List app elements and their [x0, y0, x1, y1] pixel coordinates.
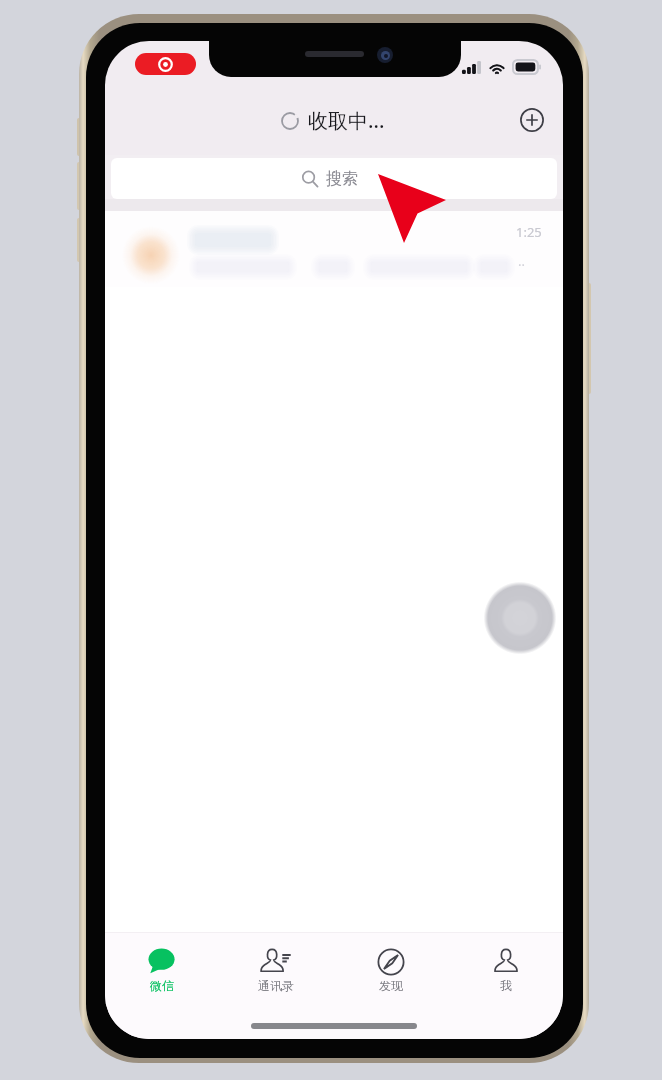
- button[interactable]: Add: [516, 104, 548, 136]
- staticText: 我: [500, 978, 512, 993]
- staticText: 搜索: [326, 169, 358, 189]
- button[interactable]: 微信: [105, 933, 219, 993]
- staticText: 收取中...: [308, 107, 385, 134]
- staticText: 发现: [379, 978, 403, 993]
- staticText: 通讯录: [258, 978, 294, 993]
- staticText: ..: [518, 252, 525, 270]
- button[interactable]: 搜索: [111, 158, 557, 199]
- button[interactable]: AssistiveTouch: [480, 578, 560, 658]
- staticText: 1:25: [516, 223, 542, 241]
- button[interactable]: Recording indicator: [135, 53, 196, 75]
- button[interactable]: 1:25: [105, 211, 563, 287]
- button[interactable]: 发现: [333, 933, 448, 993]
- button[interactable]: 通讯录: [219, 933, 333, 993]
- staticText: 微信: [150, 978, 174, 993]
- button[interactable]: 我: [448, 933, 563, 993]
